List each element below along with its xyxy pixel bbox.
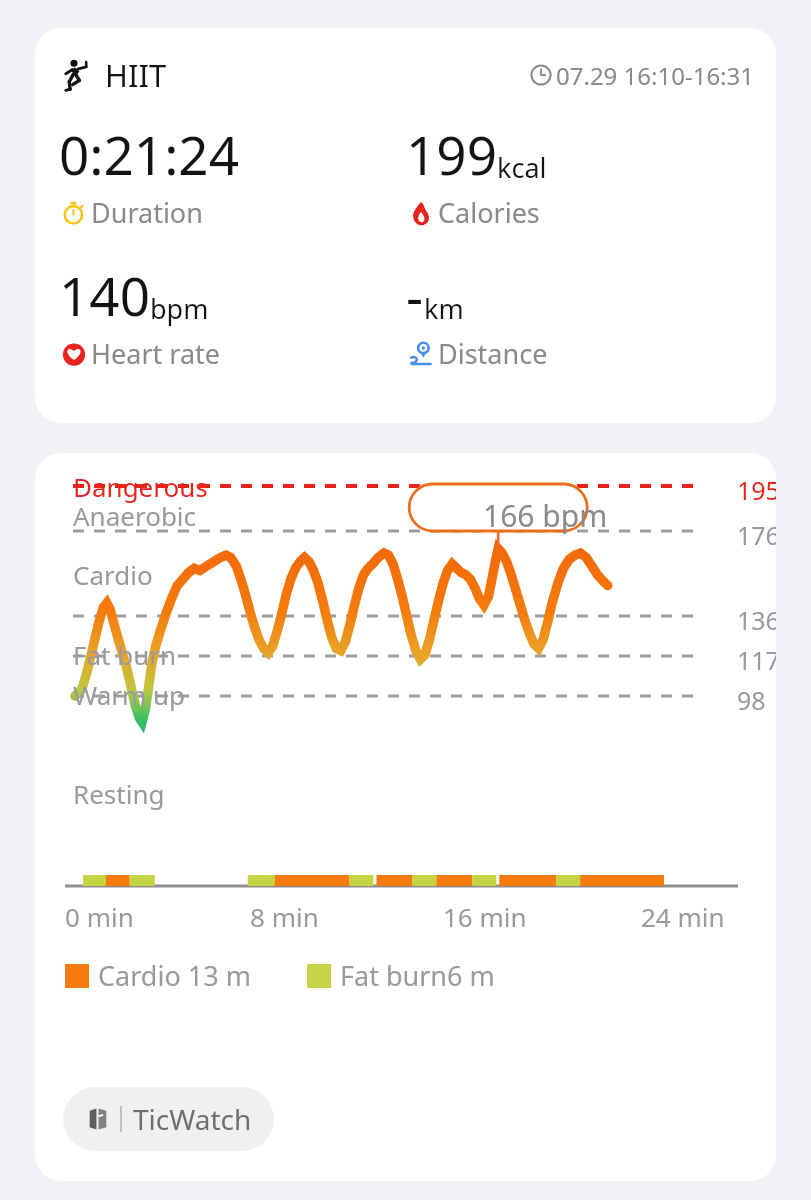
staticText: 98 [737, 683, 766, 717]
staticText: 24 min [641, 899, 725, 934]
staticText: Cardio 13 m [98, 957, 251, 994]
button[interactable]: Fat burn6 m [307, 957, 495, 994]
staticText: TicWatch [133, 1100, 252, 1138]
staticText: 176 [737, 518, 776, 552]
button[interactable]: Dangerous [35, 453, 776, 1181]
staticText: Cardio [73, 557, 153, 592]
staticText: Resting [73, 776, 165, 811]
button[interactable]: 199 [406, 118, 754, 231]
staticText: 199 [406, 118, 497, 190]
staticText: Fat burn6 m [340, 957, 495, 994]
staticText: 0:21:24 [59, 118, 239, 190]
staticText: Fat burn [73, 637, 177, 672]
staticText: 140 [59, 259, 150, 331]
button[interactable]: - [406, 259, 754, 372]
staticText: - [406, 259, 424, 331]
staticText: 0 min [65, 899, 134, 934]
staticText: Dangerous [73, 469, 208, 504]
button[interactable]: 0:21:24 [59, 118, 406, 231]
staticText: 195 [737, 473, 776, 507]
button[interactable]: 140 [59, 259, 406, 372]
staticText: km [424, 290, 464, 327]
staticText: Warm up [73, 677, 186, 712]
button[interactable]: TicWatch [63, 1087, 274, 1151]
staticText: kcal [497, 149, 547, 186]
staticText: 136 [737, 603, 776, 637]
staticText: HIIT [105, 54, 167, 96]
staticText: bpm [150, 290, 209, 327]
staticText: 16 min [443, 899, 527, 934]
staticText: Duration [91, 194, 203, 231]
staticText: 166 bpm [483, 495, 608, 536]
staticText: Distance [438, 335, 548, 372]
staticText: 8 min [250, 899, 319, 934]
button[interactable]: HIIT [35, 28, 776, 423]
button[interactable]: Cardio 13 m [65, 957, 251, 994]
staticText: 07.29 16:10-16:31 [556, 59, 754, 92]
staticText: 117 [737, 643, 776, 677]
staticText: Calories [438, 194, 540, 231]
staticText: Anaerobic [73, 498, 197, 533]
staticText: Heart rate [91, 335, 221, 372]
